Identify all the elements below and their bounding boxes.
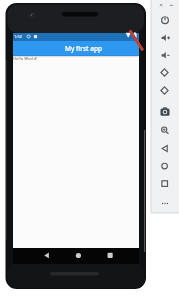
button[interactable] — [157, 123, 174, 139]
staticText: My first app — [65, 44, 103, 53]
button[interactable]: My first app — [60, 42, 108, 55]
button[interactable] — [157, 47, 174, 63]
button[interactable] — [157, 65, 174, 81]
button[interactable] — [157, 158, 174, 174]
staticText: 1:52 — [14, 34, 23, 40]
button[interactable] — [157, 83, 174, 99]
button[interactable] — [68, 248, 89, 263]
button[interactable] — [157, 12, 174, 28]
button[interactable] — [13, 41, 139, 56]
staticText: Hello World! — [13, 56, 38, 62]
button[interactable] — [157, 176, 174, 192]
button[interactable] — [157, 141, 174, 157]
button[interactable] — [157, 104, 174, 120]
button[interactable] — [157, 196, 174, 212]
button[interactable] — [99, 248, 121, 263]
button[interactable] — [36, 248, 57, 263]
button[interactable] — [157, 30, 174, 46]
